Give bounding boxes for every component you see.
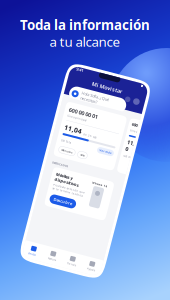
staticText: Línea principal [54, 120, 74, 123]
button[interactable]: Inicio [45, 254, 65, 269]
staticText: Hola Sofía, ¿Qué necesitas? [62, 93, 90, 104]
staticText: de 25 GB [74, 134, 88, 137]
staticText: GB Da [118, 145, 126, 148]
button[interactable]: Factura [65, 254, 85, 269]
staticText: Toda la información [20, 16, 150, 34]
staticText: DESTACADOS [51, 169, 67, 172]
staticText: 11,04 [54, 129, 72, 138]
staticText: GB Total [54, 145, 65, 149]
staticText: Móviles y dispositivos [58, 178, 83, 189]
staticText: ▮▮ [117, 73, 119, 76]
staticText: Tienda [91, 263, 100, 266]
staticText: a tu alcance [49, 33, 120, 50]
staticText: Sms [76, 154, 80, 158]
staticText: 11,0 [118, 128, 126, 143]
button[interactable]: Ayuda [105, 254, 125, 269]
staticText: Descubre [62, 203, 81, 209]
staticText: Ver más [94, 145, 106, 149]
button[interactable]: Descubre [58, 201, 85, 211]
staticText: Factura [71, 263, 79, 266]
button[interactable]: Tienda [85, 254, 105, 269]
staticText: iPhone 16 [95, 178, 111, 182]
staticText: Pruébalo antes de que se te termine la o… [58, 190, 91, 197]
staticText: Minutos [57, 154, 68, 158]
staticText: Mi Movistar [70, 81, 101, 88]
staticText: 600 00 00 01 [54, 112, 84, 119]
